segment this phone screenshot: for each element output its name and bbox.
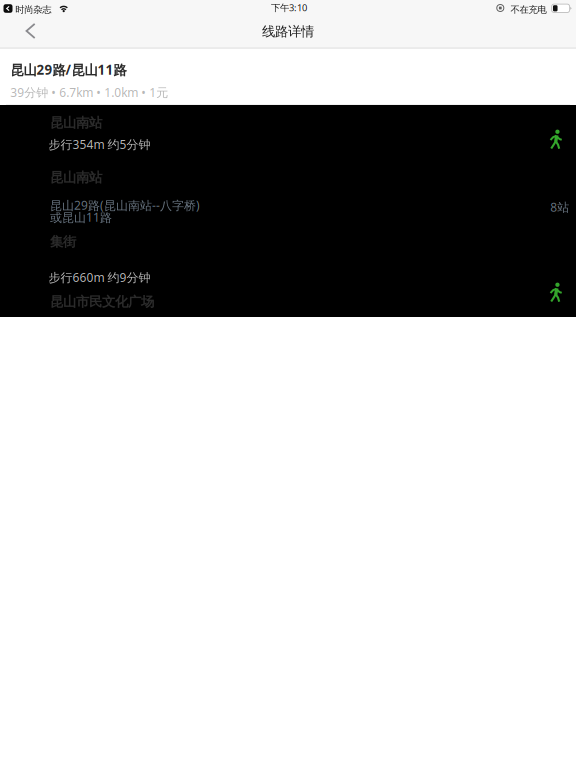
staticText: 39分钟 • 6.7km • 1.0km • 1元 <box>10 84 168 100</box>
staticText: 昆山29路/昆山11路 <box>10 61 126 78</box>
button[interactable]: 昆山南站 <box>0 105 576 157</box>
staticText: 昆山29路(昆山南站--八字桥) <box>50 197 200 213</box>
staticText: 步行354m 约5分钟 <box>49 136 151 152</box>
staticText: 昆山南站 <box>50 169 102 186</box>
staticText: 步行660m 约9分钟 <box>49 269 151 285</box>
staticText: 8站 <box>550 199 569 215</box>
button[interactable]: 昆山南站 <box>0 157 576 257</box>
button[interactable]: Back <box>11 17 51 45</box>
staticText: 昆山市民文化广场 <box>50 293 154 310</box>
button[interactable]: 步行660m 约9分钟 <box>0 257 576 317</box>
staticText: 昆山南站 <box>50 114 102 131</box>
staticText: 不在充电 <box>510 4 546 15</box>
staticText: 时尚杂志 <box>15 4 51 15</box>
staticText: 线路详情 <box>262 23 314 40</box>
staticText: 下午3:10 <box>271 1 307 14</box>
staticText: 或昆山11路 <box>50 209 112 225</box>
staticText: 集街 <box>50 234 76 250</box>
